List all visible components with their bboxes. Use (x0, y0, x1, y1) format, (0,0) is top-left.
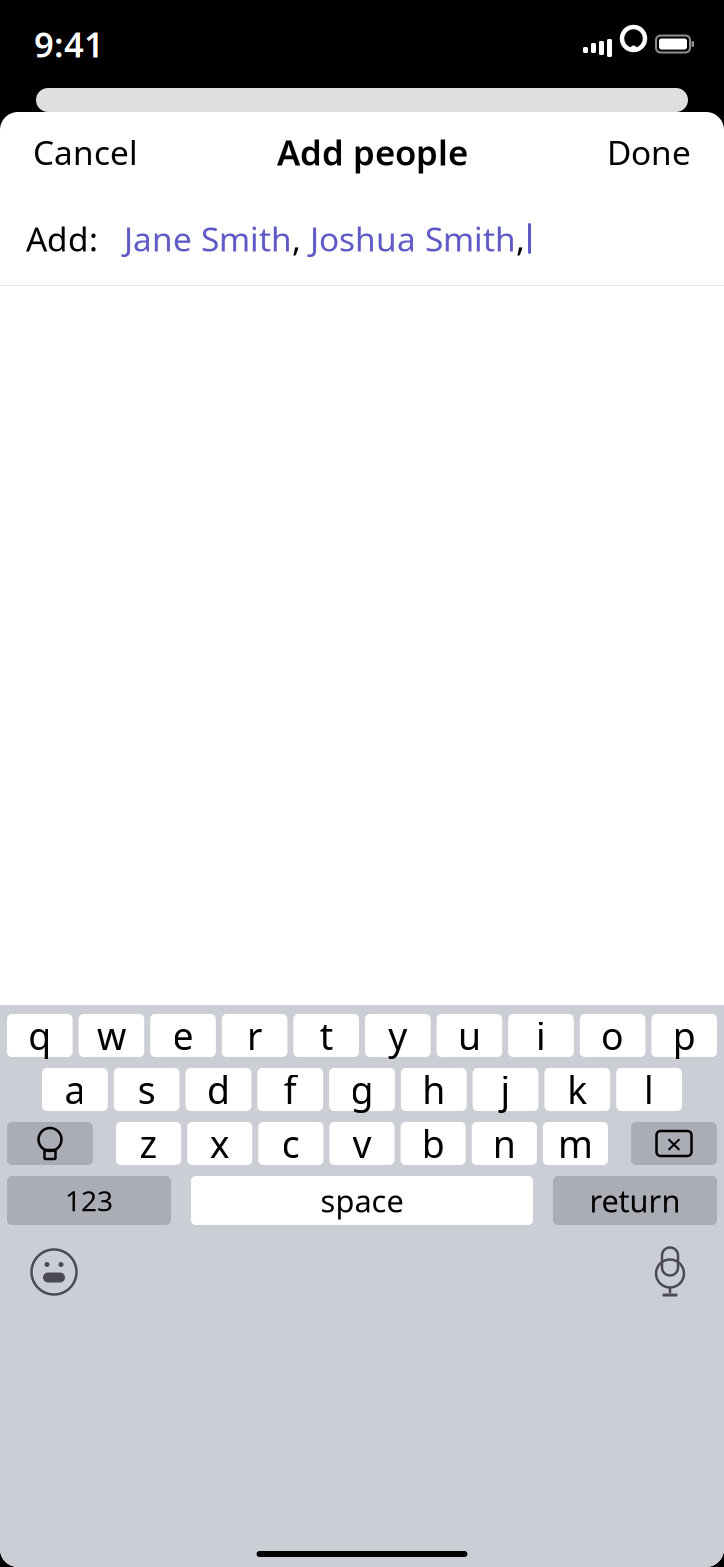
button[interactable]: r (222, 1014, 287, 1057)
staticText: , (292, 216, 301, 261)
staticText: Jane Smith (124, 216, 292, 261)
staticText: y (388, 1011, 407, 1060)
button[interactable]: s (114, 1068, 180, 1111)
staticText: t (320, 1011, 333, 1060)
staticText: Cancel (33, 130, 138, 174)
button[interactable]: return (553, 1176, 717, 1225)
button[interactable]: o (580, 1014, 645, 1057)
staticText: × (666, 1125, 682, 1162)
button[interactable]: u (437, 1014, 502, 1057)
staticText: j (501, 1065, 511, 1114)
button[interactable]: e (150, 1014, 216, 1057)
staticText: v (352, 1119, 371, 1168)
staticText: space (320, 1180, 403, 1221)
staticText: m (558, 1119, 593, 1168)
button[interactable]: q (7, 1014, 73, 1057)
button[interactable]: p (651, 1014, 717, 1057)
staticText: 9:41 (34, 21, 104, 67)
button[interactable]: j (473, 1068, 538, 1111)
button[interactable]: Dictation (642, 1244, 698, 1300)
button[interactable]: a (42, 1068, 108, 1111)
button[interactable]: Emoji keyboard (26, 1244, 82, 1300)
staticText: x (210, 1119, 230, 1168)
staticText: 123 (65, 1182, 113, 1219)
staticText: p (673, 1011, 696, 1060)
staticText: Add: (26, 216, 98, 261)
button[interactable]: Shift (7, 1122, 93, 1165)
button[interactable]: l (616, 1068, 682, 1111)
staticText: c (282, 1119, 300, 1168)
button[interactable]: Cancel (21, 120, 150, 184)
staticText: e (172, 1011, 193, 1060)
staticText: u (458, 1011, 481, 1060)
button[interactable]: t (293, 1014, 359, 1057)
staticText: r (247, 1011, 262, 1060)
button[interactable]: x (187, 1122, 252, 1165)
staticText: b (422, 1119, 445, 1168)
staticText: , (516, 216, 525, 261)
button[interactable]: h (401, 1068, 467, 1111)
staticText: n (493, 1119, 516, 1168)
button[interactable]: space (191, 1176, 533, 1225)
staticText: return (589, 1180, 680, 1221)
button[interactable]: d (186, 1068, 251, 1111)
staticText: h (422, 1065, 445, 1114)
staticText: a (64, 1065, 85, 1114)
button[interactable]: z (116, 1122, 181, 1165)
staticText: w (97, 1011, 126, 1060)
button[interactable]: w (79, 1014, 144, 1057)
button[interactable]: 123 (7, 1176, 171, 1225)
staticText: s (138, 1065, 156, 1114)
staticText: o (601, 1011, 624, 1060)
button[interactable]: b (401, 1122, 466, 1165)
button[interactable]: g (329, 1068, 395, 1111)
staticText: q (28, 1011, 51, 1060)
button[interactable]: Delete (631, 1122, 717, 1165)
staticText: Add people (277, 129, 468, 175)
button[interactable]: Done (595, 120, 703, 184)
staticText: d (207, 1065, 230, 1114)
staticText: l (644, 1065, 654, 1114)
staticText: z (140, 1119, 158, 1168)
staticText: Done (607, 130, 691, 174)
staticText: Joshua Smith (310, 216, 516, 261)
button[interactable]: i (508, 1014, 574, 1057)
staticText: f (284, 1065, 297, 1114)
button[interactable]: m (543, 1122, 608, 1165)
button[interactable]: c (258, 1122, 323, 1165)
button[interactable]: Add: (0, 192, 724, 285)
button[interactable]: y (365, 1014, 431, 1057)
button[interactable]: f (257, 1068, 323, 1111)
button[interactable]: n (472, 1122, 537, 1165)
staticText: i (536, 1011, 546, 1060)
button[interactable]: k (544, 1068, 610, 1111)
staticText: g (350, 1065, 373, 1114)
button[interactable]: v (329, 1122, 394, 1165)
staticText: k (567, 1065, 587, 1114)
